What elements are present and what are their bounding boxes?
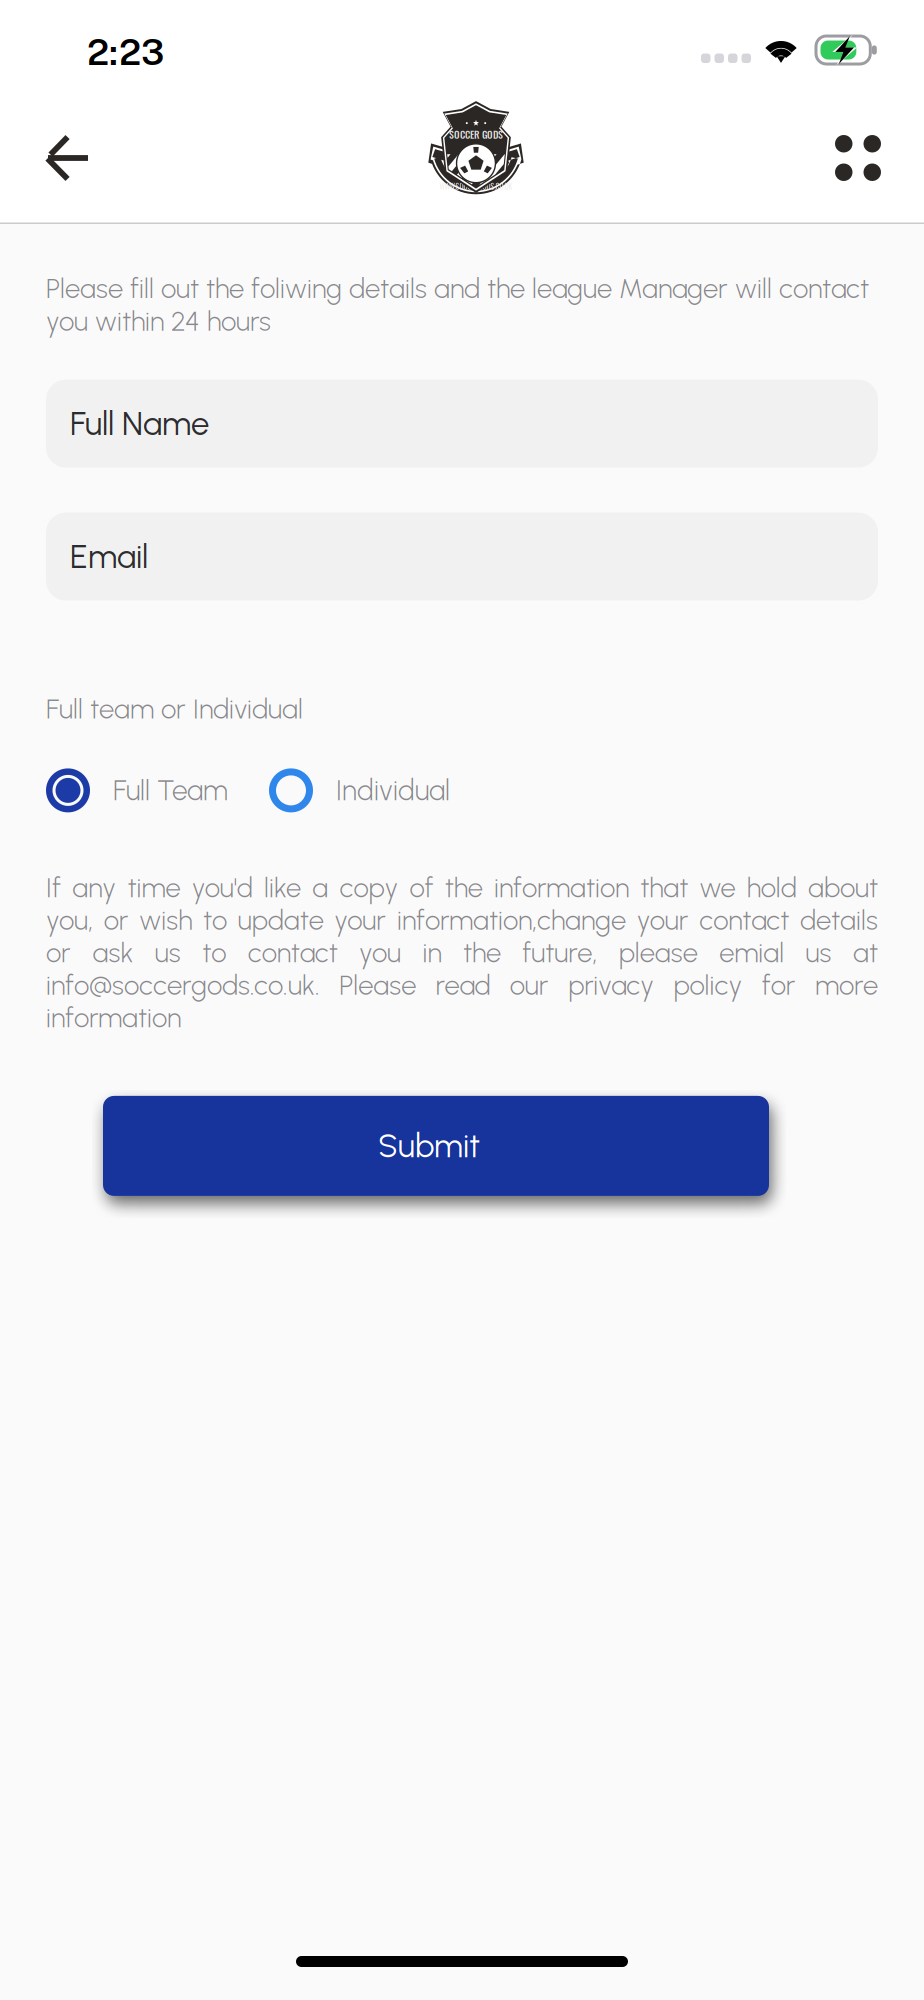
staticText: about <box>808 871 878 904</box>
staticText: If <box>46 871 61 904</box>
staticText: emial <box>719 936 784 969</box>
button[interactable]: Back <box>22 110 114 206</box>
staticText: our <box>510 969 549 1002</box>
staticText: in <box>422 936 441 969</box>
staticText: WWW.SOCCERGODS.CO.UK <box>439 181 512 192</box>
staticText: future, <box>522 936 597 969</box>
staticText: information,change <box>397 904 626 937</box>
button[interactable]: Full Team <box>46 768 228 812</box>
staticText: or <box>46 936 71 969</box>
staticText: 2:23 <box>87 31 164 73</box>
staticText: to <box>202 936 226 969</box>
staticText: a <box>312 871 328 904</box>
staticText: you'd <box>192 871 253 904</box>
staticText: privacy <box>568 969 654 1002</box>
staticText: or <box>104 904 129 937</box>
staticText: we <box>699 871 735 904</box>
staticText: you, <box>46 904 93 937</box>
button[interactable]: Email <box>46 513 878 601</box>
button[interactable]: Submit <box>103 1096 769 1196</box>
staticText: the <box>463 936 501 969</box>
staticText: Please <box>339 969 416 1002</box>
staticText: ask <box>92 936 133 969</box>
staticText: your <box>334 904 386 937</box>
staticText: Email <box>70 537 148 576</box>
staticText: like <box>264 871 301 904</box>
staticText: info@soccergods.co.uk. <box>46 969 320 1002</box>
staticText: policy <box>673 969 742 1002</box>
staticText: contact <box>248 936 338 969</box>
staticText: of <box>410 871 434 904</box>
staticText: contact <box>699 904 789 937</box>
staticText: us <box>155 936 181 969</box>
staticText: us <box>806 936 832 969</box>
staticText: more <box>815 969 878 1002</box>
staticText: that <box>640 871 688 904</box>
staticText: please <box>619 936 698 969</box>
staticText: for <box>762 969 796 1002</box>
staticText: wish <box>139 904 192 937</box>
staticText: SOCCER GODS <box>449 127 503 142</box>
staticText: details <box>800 904 878 937</box>
staticText: Full team or Individual <box>46 693 303 725</box>
staticText: the <box>445 871 483 904</box>
staticText: time <box>127 871 180 904</box>
staticText: Full Name <box>70 404 209 443</box>
staticText: you <box>359 936 401 969</box>
staticText: read <box>436 969 491 1002</box>
staticText: any <box>72 871 116 904</box>
staticText: your <box>637 904 689 937</box>
button[interactable]: Individual <box>269 768 450 812</box>
button[interactable]: Menu <box>814 109 902 207</box>
staticText: Full Team <box>113 774 228 807</box>
staticText: information <box>46 1001 181 1034</box>
staticText: to <box>203 904 227 937</box>
staticText: Individual <box>336 774 450 807</box>
staticText: at <box>853 936 878 969</box>
staticText: update <box>238 904 324 937</box>
staticText: Submit <box>378 1126 480 1165</box>
staticText: copy <box>339 871 398 904</box>
staticText: hold <box>747 871 797 904</box>
staticText: information <box>494 871 629 904</box>
button[interactable]: Full Name <box>46 380 878 468</box>
staticText: Please fill out the foliwing details and… <box>46 272 869 338</box>
